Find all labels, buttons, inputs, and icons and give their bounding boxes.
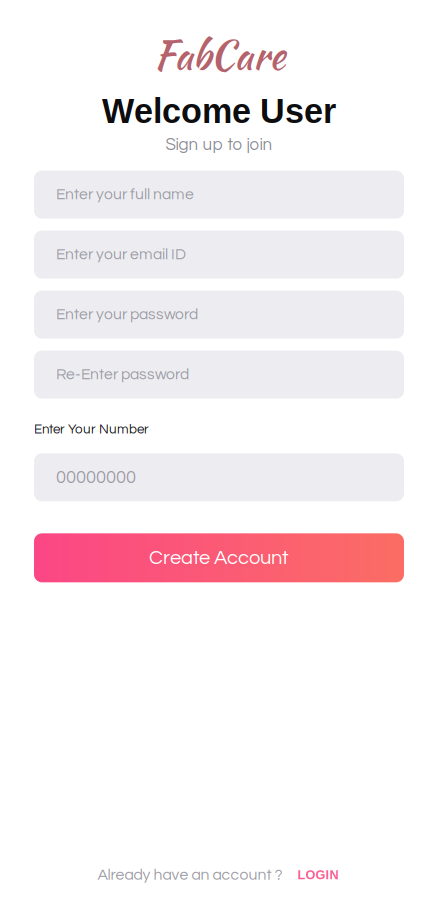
staticText: Create Account [149,547,289,568]
button[interactable]: LOGIN [295,862,340,888]
staticText: Enter your full name [56,187,194,203]
staticText: Enter your password [56,307,198,323]
staticText: Re-Enter password [56,367,189,383]
button[interactable]: Enter your email ID [34,231,404,279]
staticText: Enter your email ID [56,247,186,263]
button[interactable]: Create Account [34,533,404,582]
staticText: Enter Your Number [34,423,149,436]
staticText: LOGIN [297,868,338,882]
staticText: FabCare [153,26,285,84]
staticText: 00000000 [56,468,136,487]
staticText: Already have an account ? [97,867,282,883]
staticText: Sign up to join [165,136,272,154]
staticText: Welcome User [102,92,336,130]
button[interactable]: 00000000 [34,453,404,501]
button[interactable]: Enter your password [34,291,404,339]
button[interactable]: Re-Enter password [34,351,404,399]
button[interactable]: Enter your full name [34,171,404,219]
